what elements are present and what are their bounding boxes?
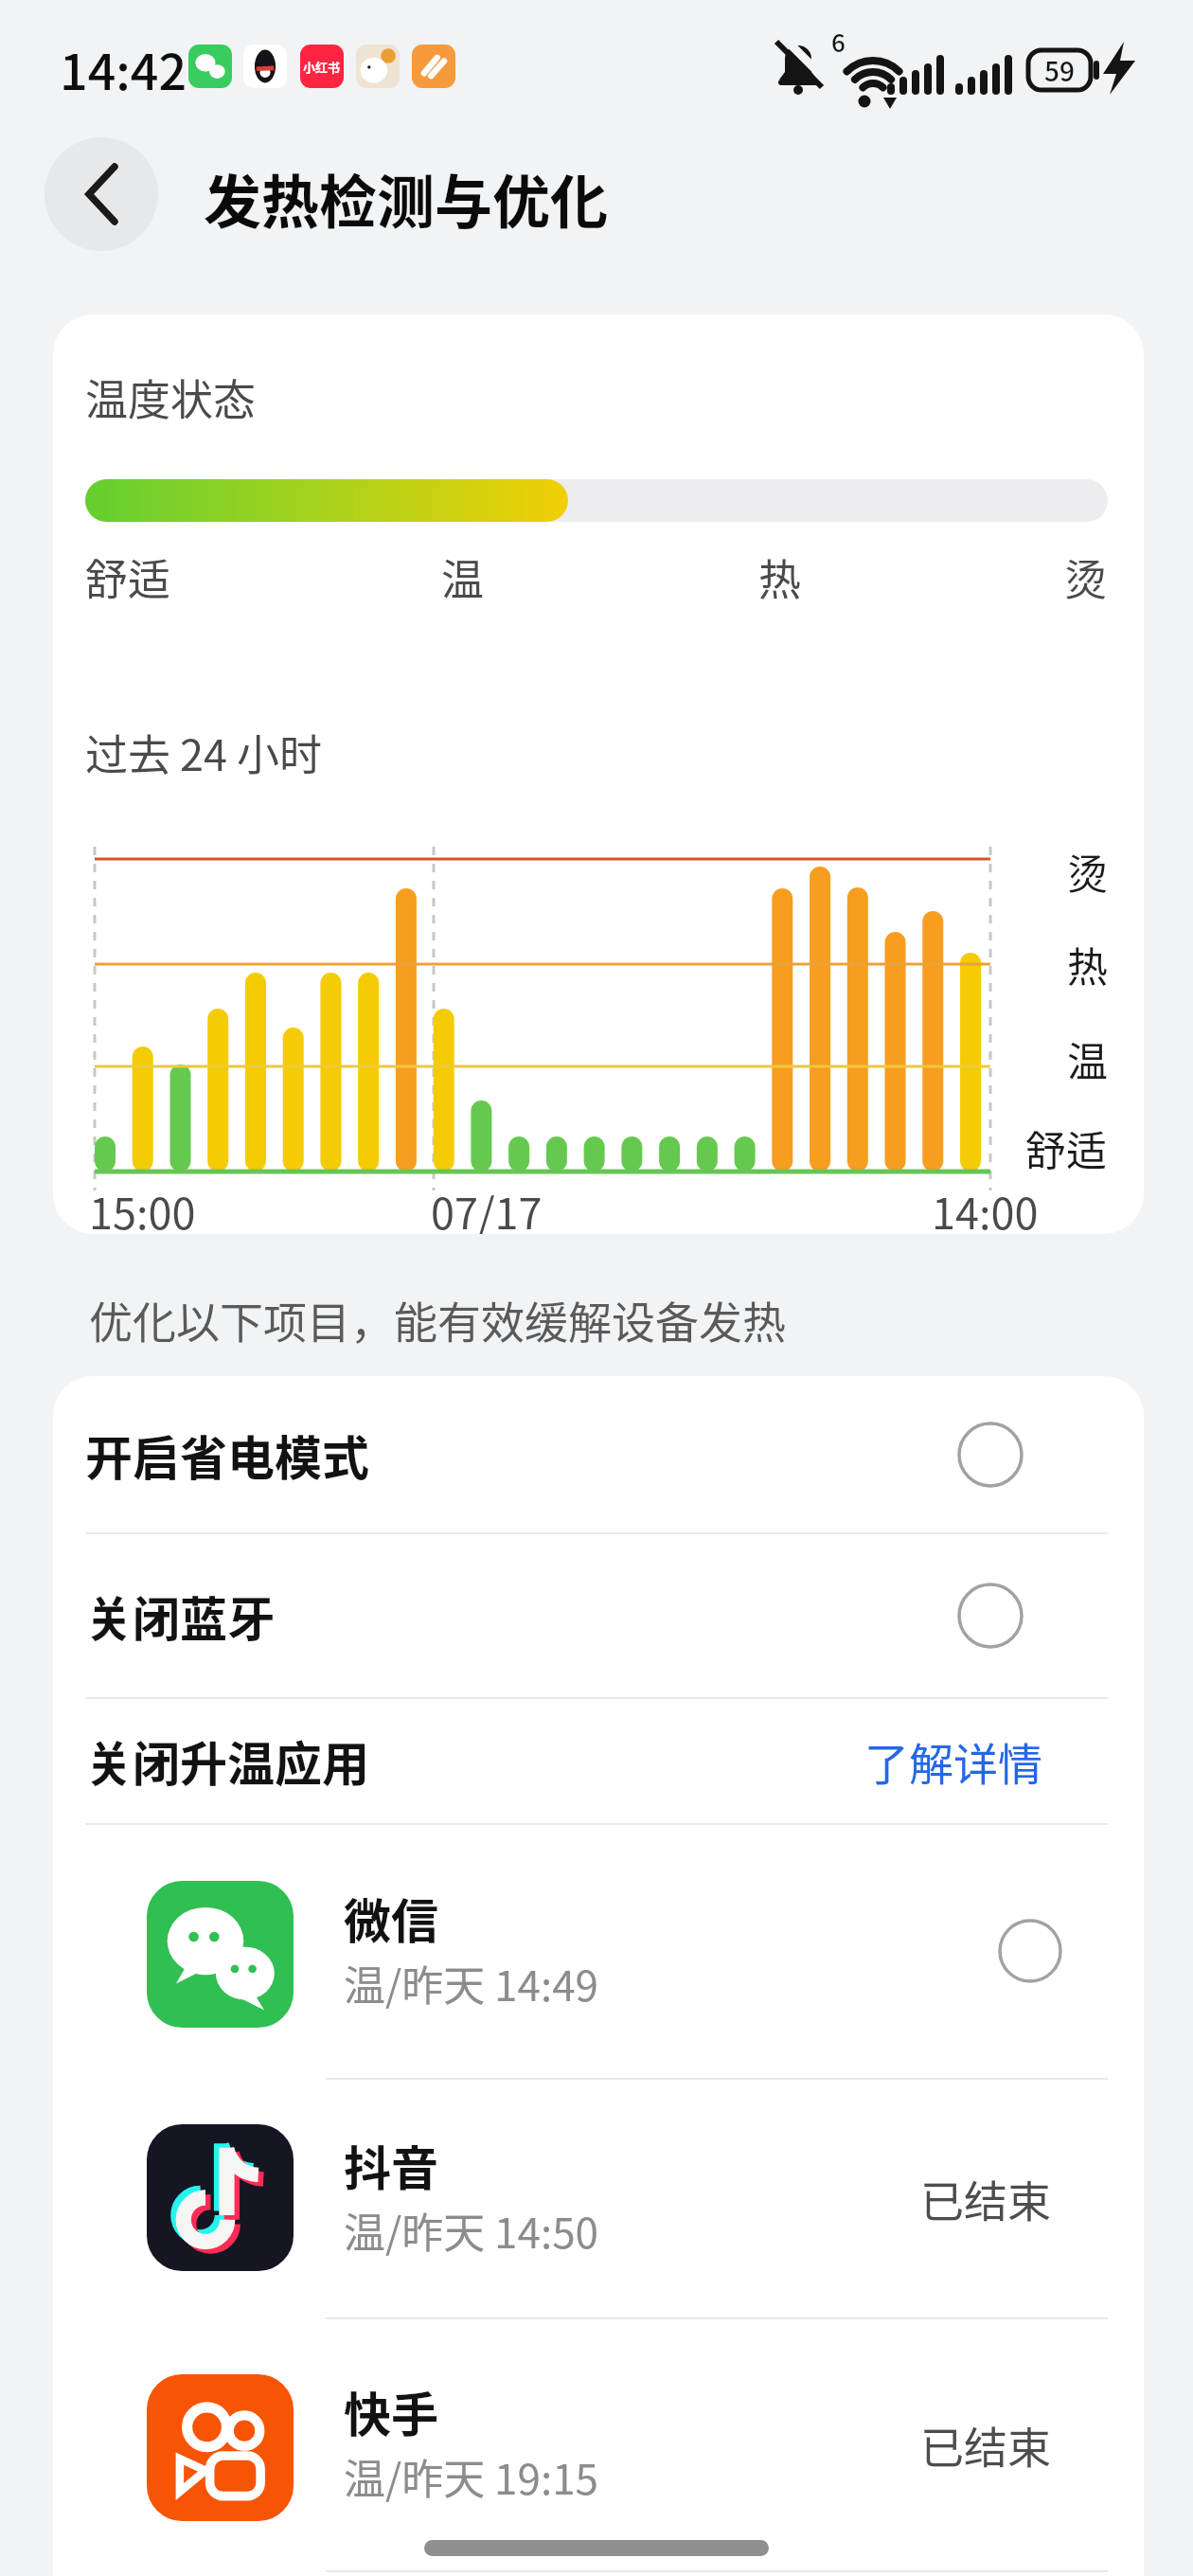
staticText: 温 <box>1067 1029 1108 1088</box>
staticText: 温/昨天 19:15 <box>344 2446 599 2507</box>
staticText: 热 <box>1067 935 1108 993</box>
button[interactable]: 微信 <box>53 1825 1144 2078</box>
staticText: 温/昨天 14:50 <box>344 2200 599 2261</box>
button[interactable] <box>953 1417 1028 1493</box>
staticText: 15:00 <box>89 1180 196 1234</box>
staticText: 烫 <box>1064 546 1108 608</box>
staticText: 07/17 <box>431 1180 543 1234</box>
staticText: 抖音 <box>344 2131 438 2199</box>
staticText: 6 <box>831 24 846 60</box>
staticText: 开启省电模式 <box>85 1421 369 1489</box>
staticText: 已结束 <box>920 2167 1051 2230</box>
staticText: 14:42 <box>60 33 187 104</box>
staticText: 14:00 <box>932 1180 1039 1234</box>
staticText: 微信 <box>344 1884 438 1952</box>
button[interactable]: 关闭蓝牙 <box>53 1534 1144 1697</box>
staticText: 舒适 <box>1025 1118 1107 1177</box>
staticText: 温度状态 <box>85 367 257 428</box>
button[interactable] <box>953 1578 1028 1654</box>
staticText: 了解详情 <box>864 1728 1042 1793</box>
staticText: 已结束 <box>920 2413 1051 2477</box>
staticText: 烫 <box>1067 842 1108 901</box>
button[interactable] <box>45 137 158 251</box>
staticText: 温/昨天 14:49 <box>344 1953 599 2013</box>
staticText: 59 <box>1044 51 1075 90</box>
button[interactable]: 抖音 <box>53 2080 1144 2317</box>
staticText: 温 <box>441 546 485 608</box>
button[interactable] <box>858 1713 1047 1808</box>
staticText: 关闭蓝牙 <box>85 1582 275 1650</box>
button[interactable] <box>992 1913 1068 1989</box>
staticText: 快手 <box>344 2377 438 2445</box>
staticText: 热 <box>758 546 802 608</box>
staticText: 过去 24 小时 <box>85 722 323 783</box>
staticText: 优化以下项目，能有效缓解设备发热 <box>89 1288 786 1351</box>
button[interactable]: 快手 <box>53 2319 1144 2570</box>
staticText: 小红书 <box>303 58 341 76</box>
staticText: 关闭升温应用 <box>85 1726 369 1795</box>
staticText: 发热检测与优化 <box>204 156 609 232</box>
button[interactable]: 关闭升温应用 <box>53 1699 1144 1823</box>
staticText: 舒适 <box>85 546 171 608</box>
button[interactable]: 开启省电模式 <box>53 1376 1144 1532</box>
